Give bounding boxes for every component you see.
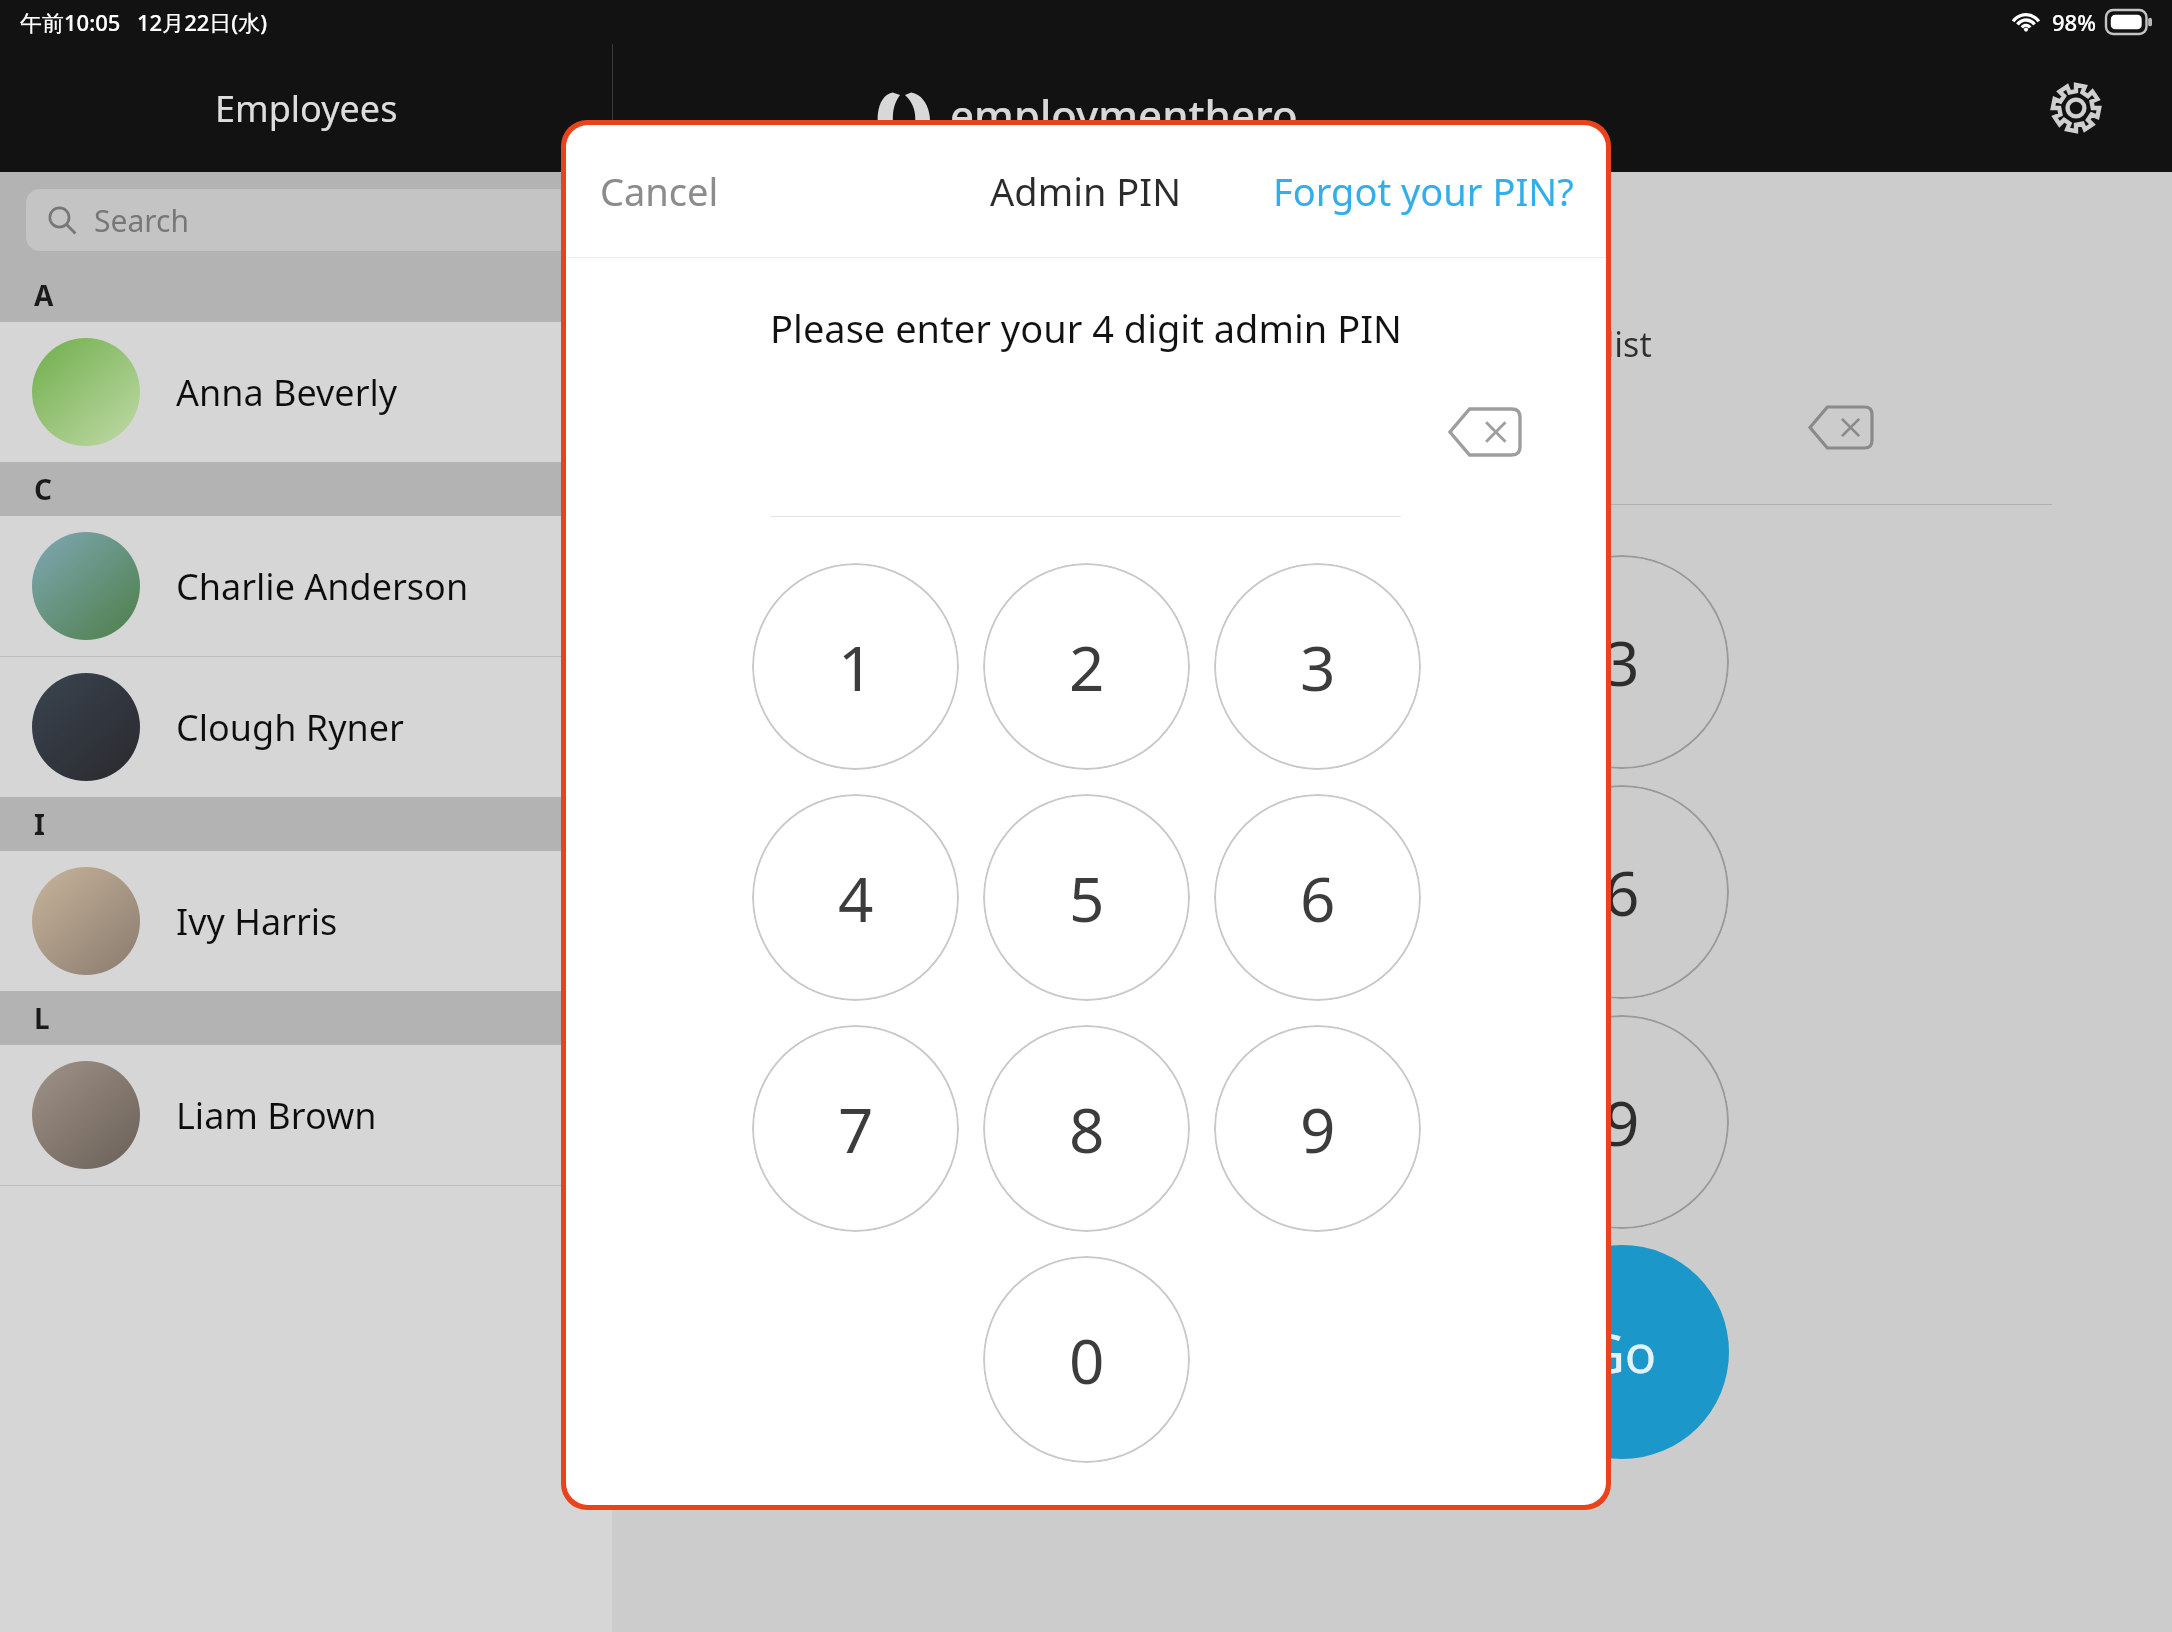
staticText: Please enter your 4 digit admin PIN bbox=[566, 302, 1606, 354]
staticText: 98% bbox=[2052, 7, 2096, 37]
button[interactable]: 5 bbox=[983, 794, 1190, 1001]
button[interactable]: Cancel bbox=[584, 151, 735, 231]
button[interactable]: 1 bbox=[1055, 555, 1269, 769]
button[interactable]: 4 bbox=[752, 794, 959, 1001]
staticText: Liam Brown bbox=[176, 1091, 377, 1140]
staticText: 4 bbox=[1144, 850, 1180, 934]
staticText: Charlie Anderson bbox=[176, 562, 469, 611]
staticText: 9 bbox=[1604, 1080, 1640, 1164]
button[interactable]: Anna Beverly bbox=[0, 322, 612, 462]
staticText: Employees bbox=[215, 84, 398, 133]
staticText: 4 bbox=[838, 856, 874, 940]
button[interactable]: Go bbox=[1515, 1245, 1729, 1459]
button[interactable]: 8 bbox=[1285, 1015, 1499, 1229]
staticText: 午前10:05 bbox=[20, 7, 121, 37]
button[interactable]: 9 bbox=[1515, 1015, 1729, 1229]
staticText: I bbox=[34, 805, 45, 843]
staticText: 6 bbox=[1300, 856, 1336, 940]
button[interactable]: Forgot your PIN? bbox=[1259, 151, 1588, 231]
staticText: 7 bbox=[1144, 1080, 1180, 1164]
staticText: or select your name from the list bbox=[1132, 321, 1652, 367]
button[interactable]: Clough Ryner bbox=[0, 657, 612, 797]
staticText: 6 bbox=[1604, 850, 1640, 934]
button[interactable]: 2 bbox=[1285, 555, 1499, 769]
button[interactable]: Charlie Anderson bbox=[0, 516, 612, 656]
staticText: Ivy Harris bbox=[176, 897, 338, 946]
button[interactable]: 0 bbox=[983, 1256, 1190, 1463]
staticText: employmenthero bbox=[950, 86, 1298, 143]
button[interactable]: Backspace bbox=[1442, 400, 1528, 464]
staticText: 0 bbox=[1069, 1318, 1105, 1402]
staticText: 3 bbox=[1300, 625, 1336, 709]
staticText: 8 bbox=[1069, 1087, 1105, 1171]
staticText: 3 bbox=[1604, 620, 1640, 704]
staticText: Clough Ryner bbox=[176, 703, 404, 752]
button[interactable]: Liam Brown bbox=[0, 1045, 612, 1185]
button[interactable]: 3 bbox=[1515, 555, 1729, 769]
staticText: 12月22日(水) bbox=[137, 7, 268, 37]
button[interactable]: 9 bbox=[1214, 1025, 1421, 1232]
staticText: Go bbox=[1587, 1317, 1657, 1388]
button[interactable]: 7 bbox=[752, 1025, 959, 1232]
button[interactable]: 8 bbox=[983, 1025, 1190, 1232]
staticText: 9 bbox=[1300, 1087, 1336, 1171]
button[interactable]: 7 bbox=[1055, 1015, 1269, 1229]
button[interactable]: 4 bbox=[1055, 785, 1269, 999]
staticText: C bbox=[34, 470, 52, 508]
button[interactable]: 6 bbox=[1515, 785, 1729, 999]
staticText: 2 bbox=[1069, 625, 1105, 709]
button[interactable]: 1 bbox=[752, 563, 959, 770]
button[interactable]: Settings bbox=[2040, 72, 2112, 144]
button[interactable]: 5 bbox=[1285, 785, 1499, 999]
button[interactable]: 2 bbox=[983, 563, 1190, 770]
staticText: A bbox=[34, 276, 54, 314]
staticText: Search bbox=[94, 200, 189, 241]
staticText: Forgot your PIN? bbox=[1273, 165, 1574, 217]
button[interactable]: Employees bbox=[0, 44, 612, 172]
button[interactable]: 3 bbox=[1214, 563, 1421, 770]
staticText: Cancel bbox=[600, 165, 719, 217]
staticText: Anna Beverly bbox=[176, 368, 398, 417]
button[interactable]: Ivy Harris bbox=[0, 851, 612, 991]
staticText: 5 bbox=[1069, 856, 1105, 940]
staticText: 7 bbox=[838, 1087, 874, 1171]
staticText: Admin PIN bbox=[990, 165, 1182, 217]
staticText: L bbox=[34, 999, 50, 1037]
button[interactable]: Search bbox=[26, 189, 586, 251]
staticText: 1 bbox=[838, 625, 874, 709]
button[interactable]: 6 bbox=[1214, 794, 1421, 1001]
